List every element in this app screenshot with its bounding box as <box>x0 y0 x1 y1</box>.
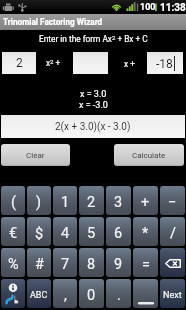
staticText: 11:38 <box>160 2 186 14</box>
button[interactable]: 1 <box>53 186 77 215</box>
button[interactable]: 8 <box>79 248 104 277</box>
button[interactable]: Clear <box>1 144 70 166</box>
staticText: 2 <box>16 56 23 70</box>
staticText: % <box>8 256 19 273</box>
staticText: / <box>170 225 176 242</box>
button[interactable]: Delete <box>160 248 185 277</box>
button[interactable]: . <box>106 279 131 308</box>
staticText: 7 <box>61 256 70 273</box>
button[interactable]: 2 <box>79 186 104 215</box>
staticText: x + <box>124 59 135 69</box>
staticText: Calculate <box>132 151 166 160</box>
button[interactable]: 7 <box>53 248 77 277</box>
button[interactable]: , <box>53 279 77 308</box>
staticText: − <box>168 194 177 211</box>
staticText: 3 <box>114 194 123 211</box>
button[interactable]: + <box>133 186 158 215</box>
staticText: Trinomial Factoring Wizard <box>3 17 103 27</box>
button[interactable]: / <box>160 217 185 246</box>
staticText: x = 3.0 <box>80 89 107 100</box>
button[interactable]: ABC <box>27 279 51 308</box>
staticText: -18 <box>156 57 173 71</box>
button[interactable] <box>73 52 108 74</box>
staticText: + <box>141 194 150 211</box>
button[interactable]: 0 <box>79 279 104 308</box>
staticText: , <box>64 287 67 304</box>
button[interactable]: $ <box>27 217 51 246</box>
staticText: 8 <box>87 256 96 273</box>
button[interactable]: 4 <box>53 217 77 246</box>
button[interactable]: 2(x + 3.0)(x - 3.0) <box>1 115 185 138</box>
button[interactable]: 9 <box>106 248 131 277</box>
staticText: = <box>142 256 150 273</box>
button[interactable]: € <box>1 217 25 246</box>
staticText: . <box>117 287 121 304</box>
staticText: 4 <box>61 225 70 242</box>
button[interactable]: % <box>1 248 25 277</box>
button[interactable]: − <box>160 186 185 215</box>
button[interactable]: 2 <box>2 52 36 74</box>
button[interactable]: 6 <box>106 217 131 246</box>
staticText: 0 <box>87 287 96 304</box>
button[interactable]: Next <box>160 279 185 308</box>
staticText: 6 <box>114 225 123 242</box>
button[interactable]: Calculate <box>114 144 184 166</box>
staticText: Next <box>163 290 182 301</box>
button[interactable]: # <box>27 248 51 277</box>
staticText: 2 <box>87 194 96 211</box>
button[interactable]: Space <box>133 279 158 308</box>
staticText: € <box>9 225 18 242</box>
staticText: Enter in the form Ax2 + Bx + C <box>39 34 148 44</box>
staticText: * <box>142 225 149 242</box>
button[interactable]: ( <box>1 186 25 215</box>
staticText: 2(x + 3.0)(x - 3.0) <box>55 121 131 133</box>
button[interactable]: * <box>133 217 158 246</box>
staticText: 1 <box>61 194 70 211</box>
button[interactable]: 5 <box>79 217 104 246</box>
staticText: x2 + <box>46 58 61 68</box>
staticText: ( <box>11 194 16 211</box>
button[interactable]: = <box>133 248 158 277</box>
staticText: 100 <box>140 2 156 13</box>
staticText: 9 <box>114 256 123 273</box>
button[interactable]: -18 <box>147 52 183 74</box>
staticText: 5 <box>87 225 96 242</box>
staticText: x = -3.0 <box>79 100 108 111</box>
button[interactable]: Gesture typing <box>1 279 25 308</box>
button[interactable]: ) <box>27 186 51 215</box>
staticText: ) <box>36 194 42 211</box>
staticText: # <box>35 256 44 273</box>
button[interactable]: 3 <box>106 186 131 215</box>
staticText: ABC <box>30 290 48 301</box>
staticText: Clear <box>26 151 45 160</box>
staticText: $ <box>35 225 44 242</box>
